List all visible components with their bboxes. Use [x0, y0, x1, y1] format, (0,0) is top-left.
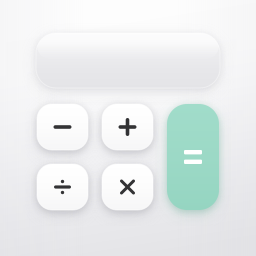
button[interactable] — [167, 104, 219, 210]
button[interactable] — [37, 104, 88, 150]
button[interactable] — [37, 164, 88, 210]
button[interactable] — [102, 164, 153, 210]
button[interactable] — [102, 104, 153, 150]
